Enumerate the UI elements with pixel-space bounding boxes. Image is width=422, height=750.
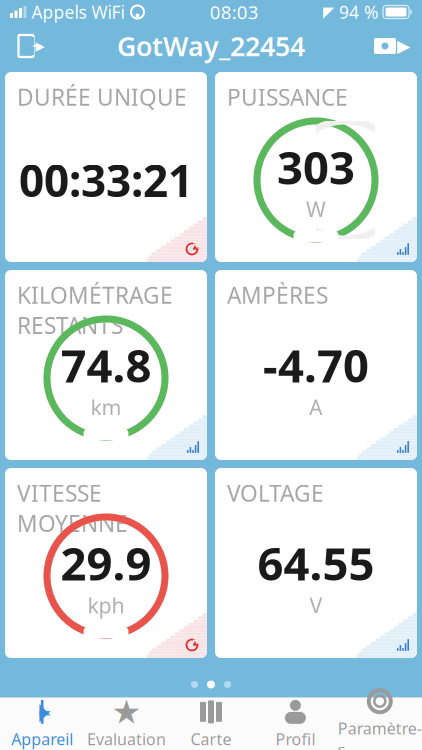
staticText: ▶ (35, 39, 44, 53)
staticText: 74.8 (60, 335, 151, 395)
staticText: KILOMÉTRAGE RESTANTS (17, 280, 173, 340)
staticText: -4.70 (263, 335, 369, 395)
staticText: VITESSE MOYENNE (17, 478, 128, 538)
button[interactable]: ★ (84, 698, 169, 750)
staticText: A (309, 393, 323, 421)
staticText: ◤ (39, 707, 50, 724)
staticText: DURÉE UNIQUE (17, 82, 187, 112)
staticText: Carte (190, 728, 231, 750)
staticText: Evaluation (87, 728, 166, 750)
staticText: GotWay_22454 (117, 28, 305, 64)
staticText: 08:03 (210, 0, 259, 24)
staticText: Appels WiFi (26, 0, 124, 23)
staticText: ◣ (39, 700, 50, 717)
staticText: ▴ (192, 637, 197, 648)
button[interactable]: ▴ (5, 468, 207, 658)
staticText: km (90, 393, 121, 421)
button[interactable]: KILOMÉTRAGE RESTANTS (5, 270, 207, 460)
staticText: W (306, 195, 326, 223)
staticText: ◤ (323, 4, 334, 20)
button[interactable]: Carte (169, 698, 253, 750)
staticText: kph (87, 591, 124, 619)
staticText: ✚ (30, 695, 55, 728)
button[interactable]: VOLTAGE (215, 468, 417, 658)
button[interactable]: ✚ (0, 698, 84, 750)
staticText: ▶ (397, 36, 410, 56)
button[interactable]: ▴ (5, 72, 207, 262)
button[interactable]: Profil (253, 698, 338, 750)
button[interactable]: PUISSANCE (215, 72, 417, 262)
staticText: 29.9 (60, 533, 151, 593)
staticText: Profil (275, 728, 315, 750)
staticText: 303 (277, 137, 355, 197)
button[interactable]: AMPÈRES (215, 270, 417, 460)
staticText: VOLTAGE (227, 478, 324, 508)
staticText: AMPÈRES (227, 280, 328, 310)
staticText: Appareil (11, 728, 73, 750)
staticText: 64.55 (257, 533, 374, 593)
staticText: PUISSANCE (227, 82, 348, 112)
button[interactable]: Paramètres (338, 698, 422, 750)
staticText: 94 % (334, 0, 383, 23)
button[interactable]: Déconnexion (8, 24, 52, 68)
staticText: V (309, 591, 322, 619)
staticText: ★ (112, 693, 142, 731)
staticText: ▴ (192, 241, 197, 252)
staticText: Paramètres (338, 718, 422, 750)
button[interactable]: Enregistrer une vidéo (370, 24, 414, 68)
staticText: 00:33:21 (19, 151, 193, 209)
